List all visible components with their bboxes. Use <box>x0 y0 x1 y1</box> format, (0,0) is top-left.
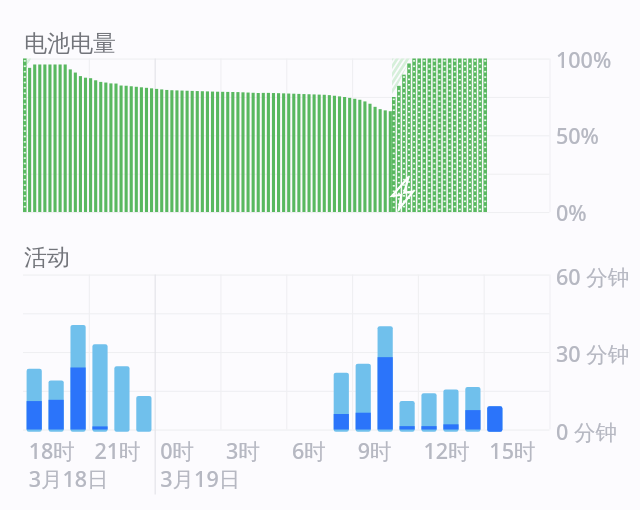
button[interactable] <box>0 0 640 510</box>
